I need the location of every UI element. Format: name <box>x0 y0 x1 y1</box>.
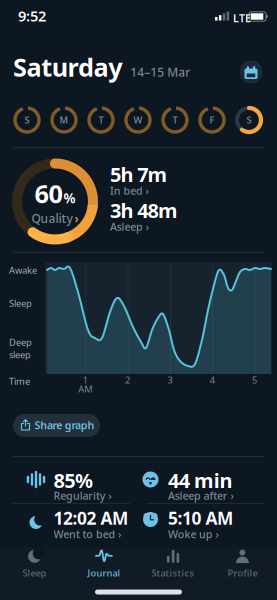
staticText: AM <box>78 383 92 395</box>
staticText: Asleep after › <box>168 488 233 503</box>
button[interactable]: 5h 7m <box>110 161 190 197</box>
staticText: 3h 48m <box>110 197 178 224</box>
staticText: 5 <box>252 374 257 386</box>
button[interactable]: Calendar <box>239 60 262 83</box>
button[interactable]: 44 min <box>141 466 251 504</box>
staticText: Woke up › <box>168 527 218 541</box>
staticText: S <box>24 114 29 126</box>
staticText: Profile <box>227 567 257 579</box>
staticText: 3 <box>167 374 172 386</box>
staticText: 44 min <box>168 467 232 494</box>
staticText: LTE <box>233 11 251 25</box>
staticText: Deep <box>9 336 32 348</box>
staticText: F <box>209 114 214 126</box>
staticText: W <box>133 114 142 126</box>
staticText: M <box>59 114 68 126</box>
button[interactable]: Journal <box>74 547 134 581</box>
button[interactable]: Statistics <box>143 547 203 581</box>
staticText: % <box>63 189 75 207</box>
button[interactable]: Profile <box>212 547 272 581</box>
staticText: 4 <box>210 374 215 386</box>
staticText: Time <box>9 375 30 387</box>
staticText: Saturday <box>13 50 122 84</box>
staticText: 1 <box>83 374 88 386</box>
staticText: T <box>172 114 177 126</box>
button[interactable]: Day T <box>161 106 189 134</box>
staticText: 12:02 AM <box>53 506 128 529</box>
button[interactable]: Day S <box>13 106 41 134</box>
staticText: Sleep <box>23 567 47 579</box>
staticText: 5h 7m <box>110 161 168 188</box>
staticText: Asleep › <box>110 219 149 234</box>
staticText: › <box>74 210 78 226</box>
staticText: S <box>246 114 251 126</box>
button[interactable]: Day W <box>124 106 152 134</box>
button[interactable]: Day S <box>235 106 263 134</box>
staticText: Journal <box>87 567 120 579</box>
button[interactable]: Day F <box>198 106 226 134</box>
staticText: Share graph <box>34 418 94 432</box>
button[interactable]: Day M <box>50 106 78 134</box>
staticText: Awake <box>9 264 37 276</box>
button[interactable]: 12:02 AM <box>27 504 137 542</box>
staticText: 85% <box>53 467 93 494</box>
staticText: T <box>98 114 103 126</box>
staticText: Went to bed › <box>53 527 121 541</box>
staticText: 60 <box>34 177 62 210</box>
staticText: 5:10 AM <box>168 506 233 529</box>
staticText: Sleep <box>9 297 32 309</box>
button[interactable]: Sleep quality 60 percent <box>10 156 100 246</box>
staticText: In bed › <box>110 183 149 198</box>
button[interactable]: Day T <box>87 106 115 134</box>
staticText: sleep <box>9 348 31 361</box>
staticText: 2 <box>125 374 130 386</box>
button[interactable]: Sleep <box>5 547 65 581</box>
staticText: 9:52 <box>18 6 46 25</box>
staticText: 14–15 Mar <box>130 64 190 80</box>
button[interactable]: 3h 48m <box>110 197 190 233</box>
staticText: Regularity › <box>53 488 111 503</box>
staticText: Quality <box>31 210 72 226</box>
staticText: Statistics <box>152 567 195 579</box>
button[interactable]: Share graph <box>13 414 100 437</box>
button[interactable]: 5:10 AM <box>141 504 251 542</box>
button[interactable]: 85% <box>27 466 137 504</box>
